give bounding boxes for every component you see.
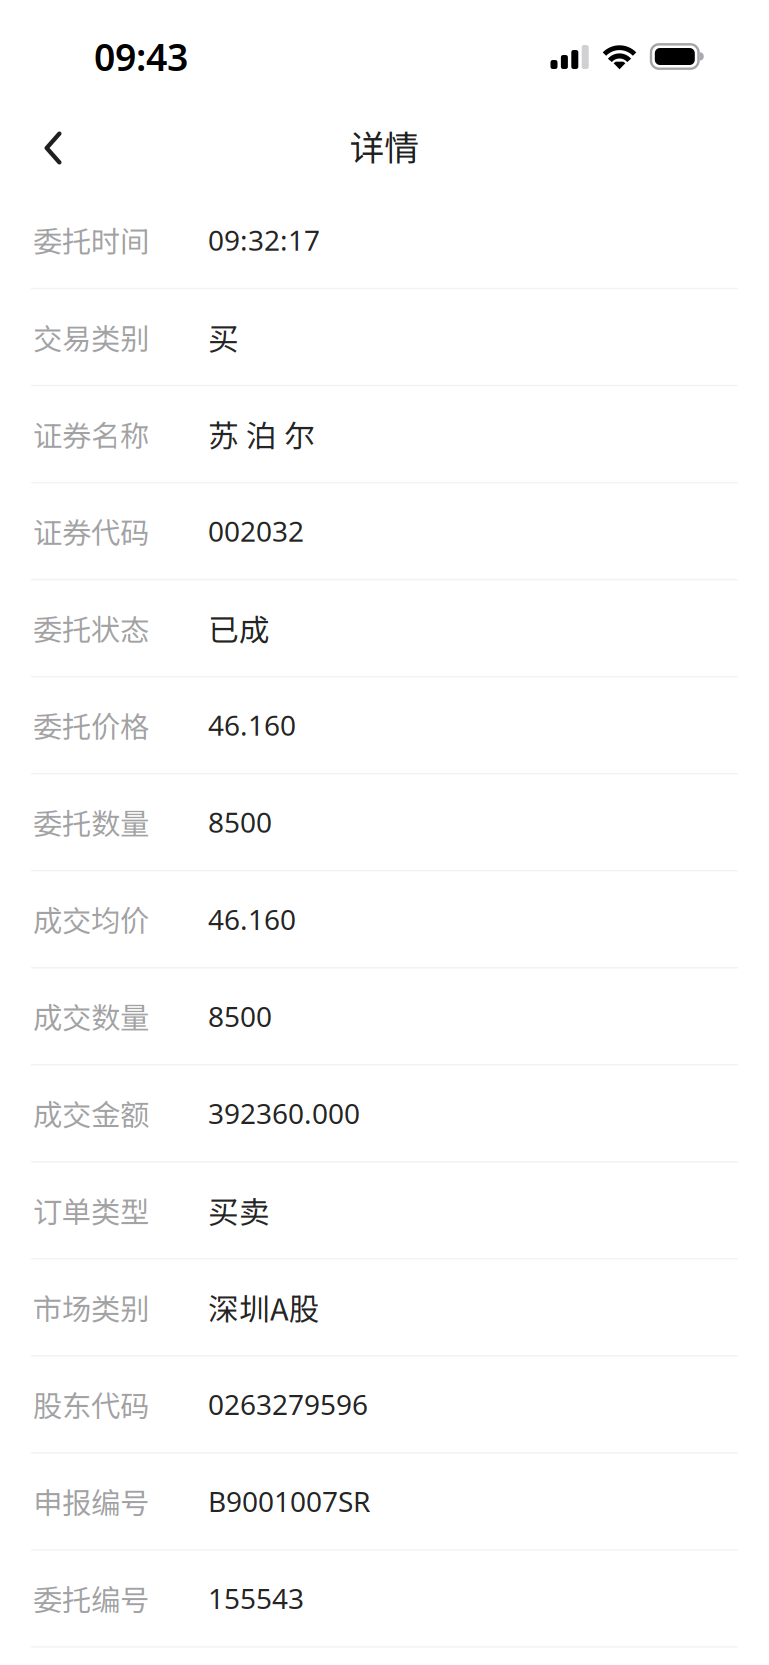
staticText: 市场类别 [33,1286,149,1328]
staticText: 详情 [349,120,419,171]
staticText: 委托时间 [33,219,149,261]
staticText: 002032 [208,512,304,549]
staticText: 委托价格 [33,704,149,746]
staticText: 买 [208,315,239,359]
staticText: 46.160 [208,900,296,938]
staticText: 证券代码 [33,510,149,552]
staticText: 已成 [208,606,270,650]
staticText: 委托数量 [33,801,149,843]
staticText: 155543 [208,1580,304,1617]
staticText: 392360.000 [208,1094,360,1132]
staticText: 委托状态 [33,607,149,649]
staticText: 买卖 [208,1188,270,1232]
staticText: 交易类别 [33,316,149,358]
staticText: 8500 [208,997,272,1035]
staticText: 成交金额 [33,1092,149,1134]
staticText: 证券名称 [33,413,149,455]
staticText: 09:43 [94,32,188,81]
staticText: 订单类型 [33,1189,149,1231]
staticText: 8500 [208,803,272,841]
staticText: 成交均价 [33,898,149,940]
staticText: 申报编号 [33,1480,149,1522]
staticText: 股东代码 [33,1383,149,1425]
staticText: 深圳A股 [208,1285,320,1329]
staticText: B9001007SR [208,1483,370,1520]
staticText: 46.160 [208,706,296,744]
staticText: 成交数量 [33,995,149,1037]
staticText: 0263279596 [208,1386,368,1423]
staticText: 苏 泊 尔 [208,412,315,456]
staticText: 09:32:17 [208,221,320,258]
button[interactable]: Back [16,113,90,183]
staticText: 委托编号 [33,1577,149,1619]
